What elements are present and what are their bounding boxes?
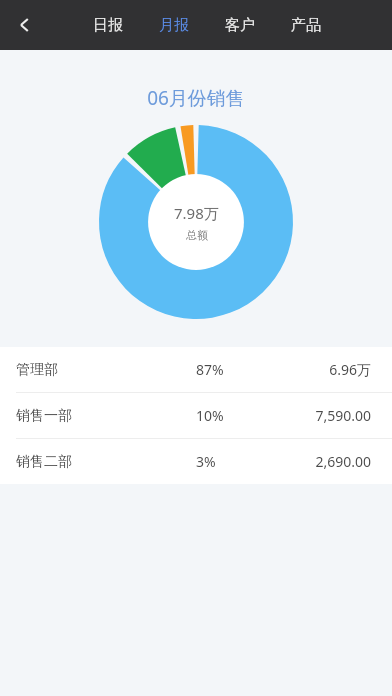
staticText: 销售一部 (16, 407, 196, 425)
staticText: 6.96万 (256, 360, 371, 379)
button[interactable]: Back (4, 4, 46, 46)
button[interactable]: 销售二部 (0, 439, 392, 484)
button[interactable]: 月报 (157, 8, 191, 43)
staticText: 月报 (159, 16, 189, 35)
staticText: 2,690.00 (256, 452, 371, 471)
button[interactable]: 客户 (223, 8, 257, 43)
button[interactable]: 产品 (289, 8, 323, 43)
staticText: 87% (196, 360, 256, 379)
staticText: 客户 (225, 16, 255, 35)
staticText: 7,590.00 (256, 406, 371, 425)
button[interactable]: 销售一部 (0, 393, 392, 438)
staticText: 总额 (186, 228, 208, 242)
staticText: 06月份销售 (0, 85, 392, 111)
staticText: 3% (196, 452, 256, 471)
staticText: 产品 (291, 16, 321, 35)
staticText: 日报 (93, 16, 123, 35)
staticText: 10% (196, 406, 256, 425)
button[interactable]: 管理部 (0, 347, 392, 392)
staticText: 7.98万 (174, 203, 219, 223)
staticText: 管理部 (16, 361, 196, 379)
button[interactable]: 日报 (91, 8, 125, 43)
staticText: 销售二部 (16, 453, 196, 471)
